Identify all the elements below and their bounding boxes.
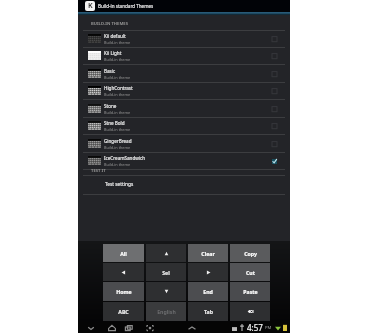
staticText: Build-in theme [104, 145, 131, 150]
other: Backspace [246, 308, 255, 315]
staticText: Paste [243, 288, 258, 295]
button[interactable]: Copy [230, 244, 270, 262]
staticText: Stone [104, 103, 117, 109]
button[interactable]: Left [103, 263, 144, 281]
button[interactable]: Home [107, 323, 117, 333]
button[interactable]: Kii default [78, 30, 290, 48]
button[interactable]: Basic [78, 65, 290, 83]
staticText: Cut [246, 269, 255, 276]
button[interactable]: Tab [188, 302, 228, 321]
staticText: End [203, 288, 213, 295]
staticText: Tab [204, 308, 213, 315]
button[interactable]: English [146, 302, 186, 321]
other: Down [162, 288, 171, 295]
button[interactable]: Expand [187, 323, 197, 333]
staticText: Kii Light [104, 50, 122, 56]
other: Right [204, 269, 213, 276]
button[interactable]: End [188, 282, 228, 301]
staticText: Build-in theme [104, 110, 131, 115]
staticText: PM [265, 325, 272, 331]
staticText: All [120, 250, 127, 257]
staticText: Build-in theme [104, 40, 131, 45]
staticText: Sel [162, 269, 170, 276]
staticText: 4:57 [247, 322, 263, 333]
button[interactable]: Right [188, 263, 228, 281]
staticText: Copy [244, 250, 257, 257]
button[interactable]: Stne Bold [78, 117, 290, 135]
staticText: IceCreamSandwich [104, 155, 146, 161]
staticText: Build-in standard Themes [98, 3, 154, 9]
staticText: Build-in theme [104, 92, 131, 97]
button[interactable]: Paste [230, 282, 270, 301]
staticText: K [88, 1, 93, 11]
button[interactable]: All [103, 244, 144, 262]
button[interactable]: IceCreamSandwich [78, 152, 290, 170]
staticText: Stne Bold [104, 120, 125, 126]
button[interactable]: Backspace [230, 302, 270, 321]
staticText: Test settings [105, 181, 134, 188]
button[interactable]: Down [146, 282, 186, 301]
button[interactable]: Sel [146, 263, 186, 281]
staticText: Build-in theme [104, 75, 131, 80]
staticText: English [157, 308, 176, 315]
staticText: Build-in theme [104, 162, 131, 167]
button[interactable]: Cut [230, 263, 270, 281]
button[interactable]: HighContrast [78, 82, 290, 100]
button[interactable]: K [78, 0, 290, 12]
staticText: HighContrast [104, 85, 133, 91]
staticText: TEST IT [91, 168, 106, 174]
staticText: Build-in theme [104, 57, 131, 62]
button[interactable]: GingerBread [78, 135, 290, 153]
button[interactable]: Test settings [78, 175, 290, 193]
button[interactable]: Switch keyboard [145, 323, 155, 333]
staticText: Build-in theme [104, 127, 131, 132]
staticText: BUILD-IN THEMES [91, 21, 129, 27]
staticText: Home [116, 288, 132, 295]
button[interactable]: Up [146, 244, 186, 262]
staticText: Clear [201, 250, 215, 257]
button[interactable]: Kii Light [78, 47, 290, 65]
staticText: ABC [118, 308, 129, 315]
button[interactable]: Clear [188, 244, 228, 262]
other: Up [162, 250, 171, 257]
button[interactable]: Stone [78, 100, 290, 118]
button[interactable]: ABC [103, 302, 144, 321]
button[interactable]: Recent apps [124, 323, 134, 333]
other: Left [119, 269, 128, 276]
button[interactable]: Home [103, 282, 144, 301]
staticText: Basic [104, 68, 116, 74]
button[interactable]: Hide keyboard [86, 323, 96, 333]
staticText: Kii default [104, 33, 126, 39]
staticText: GingerBread [104, 138, 132, 144]
